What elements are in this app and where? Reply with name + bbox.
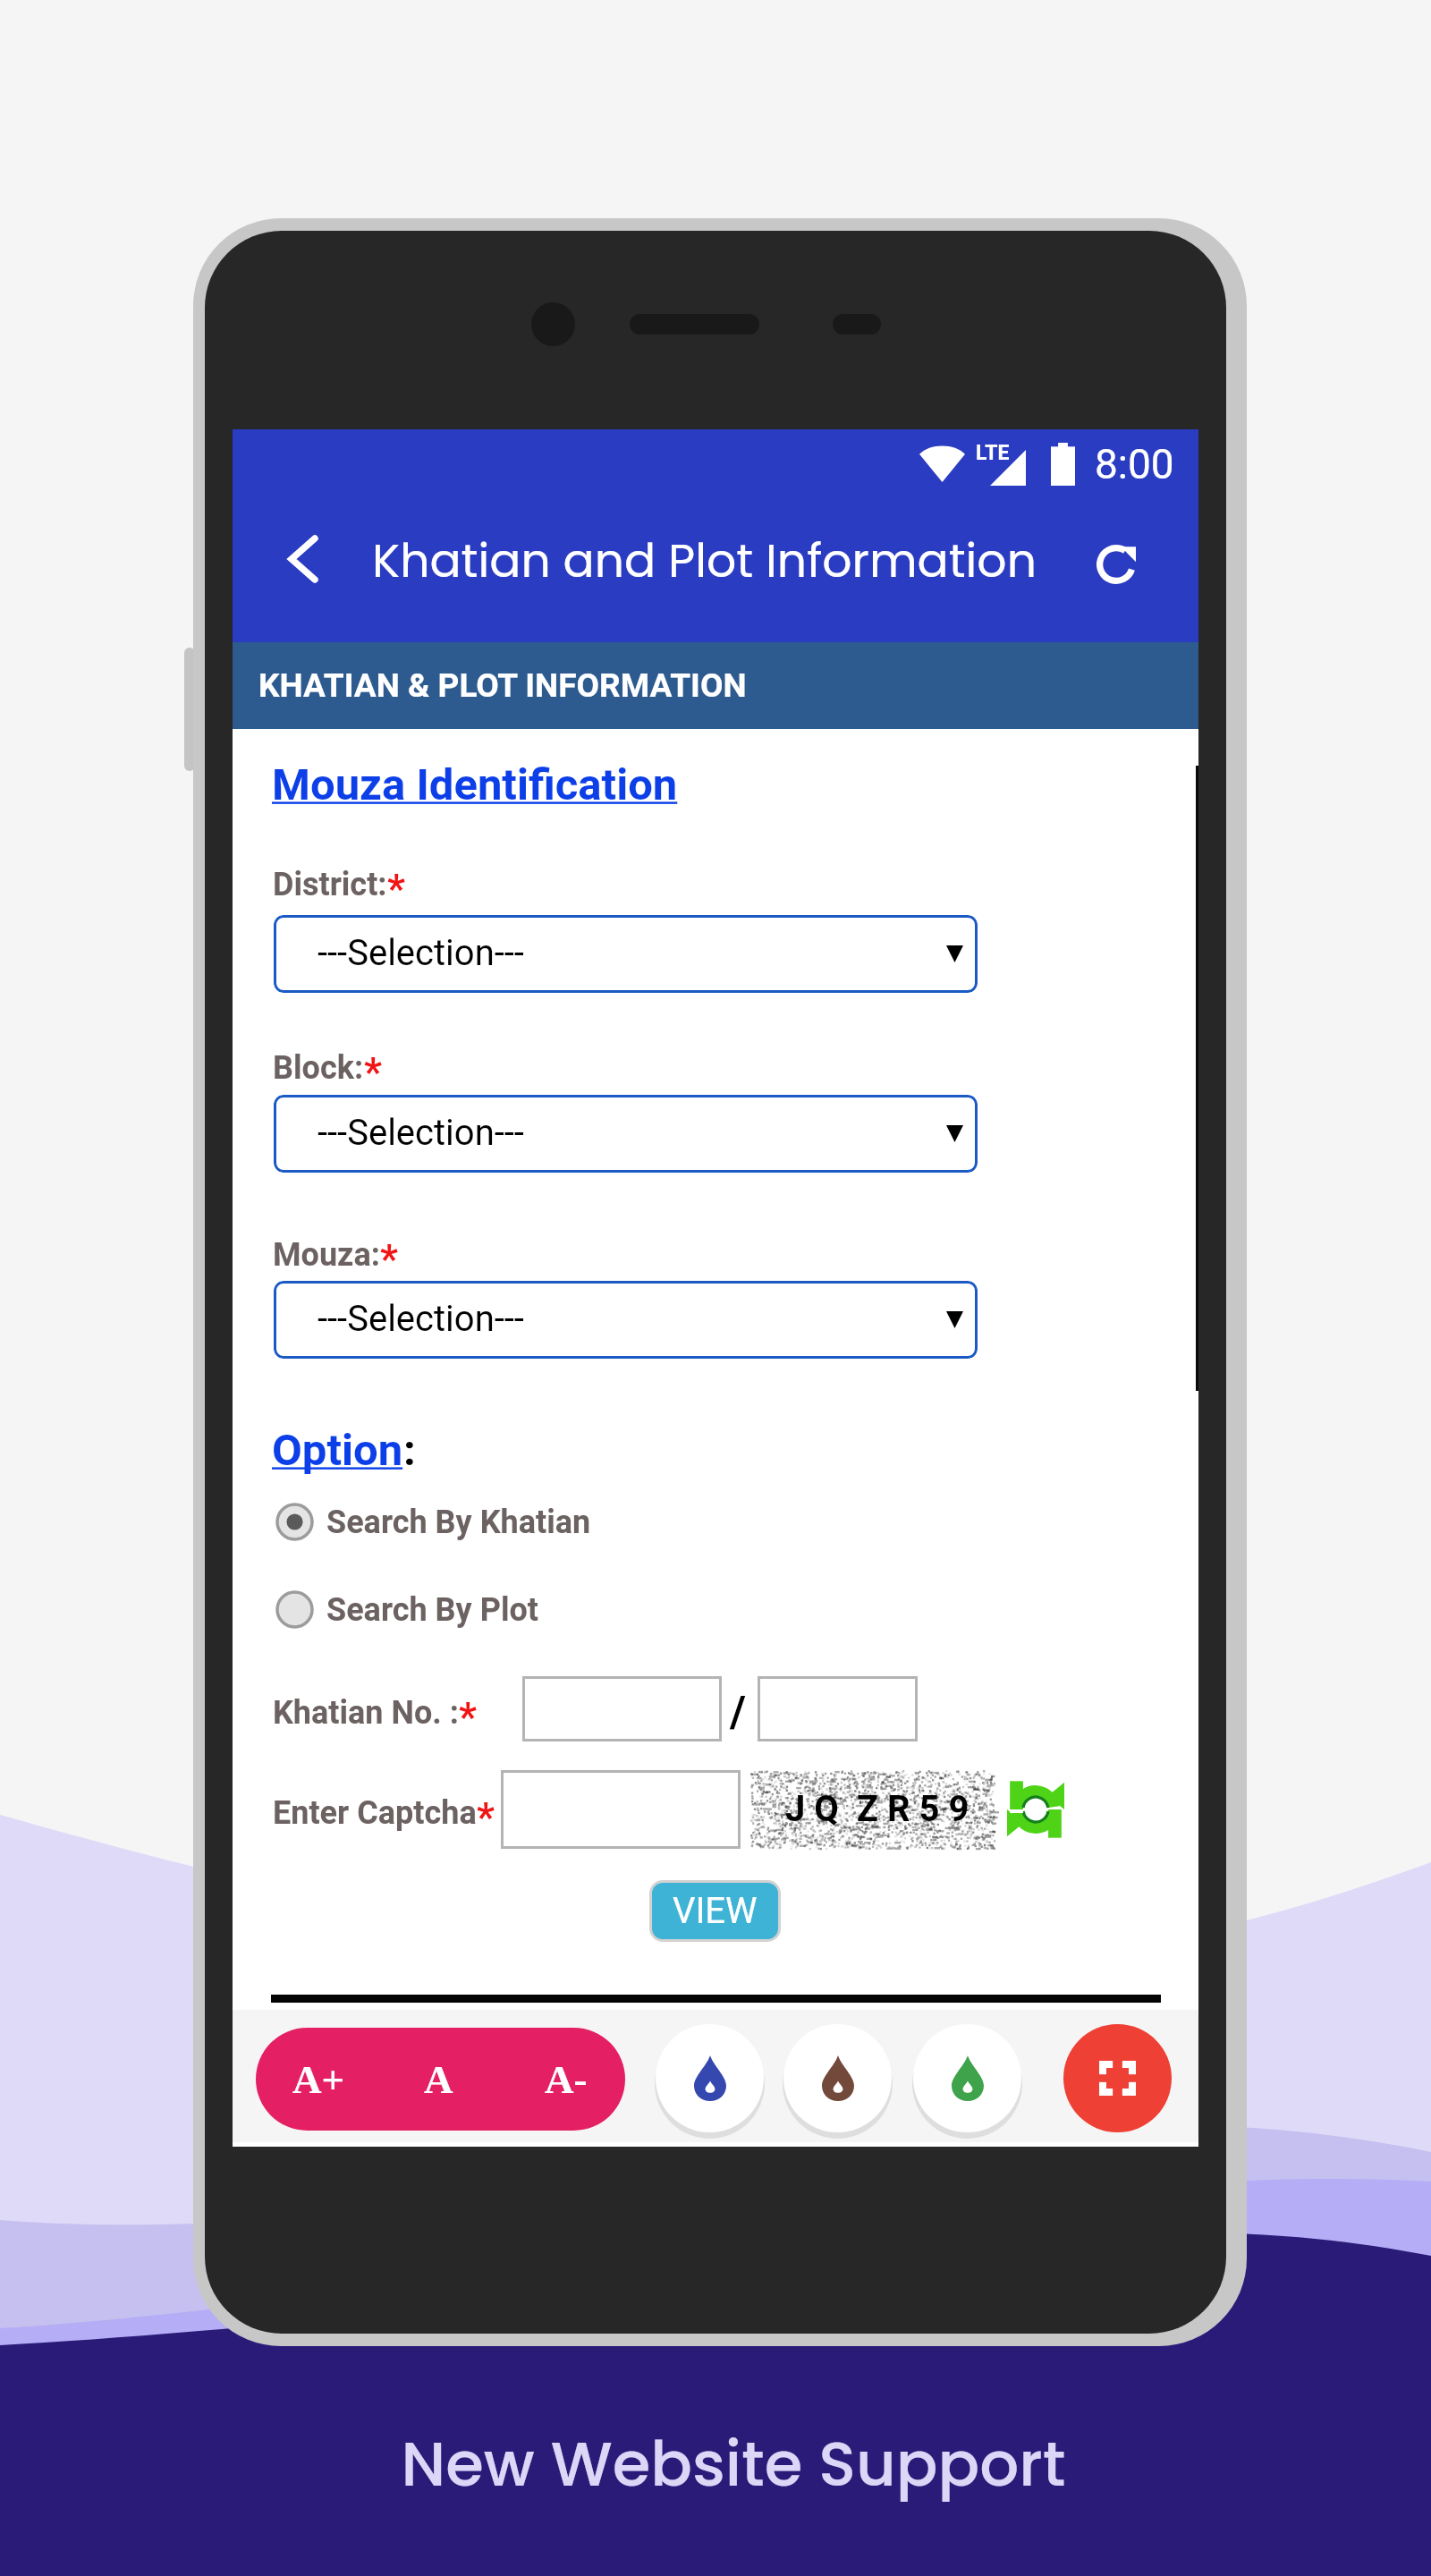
button[interactable]: Fullscreen xyxy=(1063,2024,1172,2132)
button[interactable]: Blue theme xyxy=(656,2024,764,2132)
button[interactable]: Mouza Identification xyxy=(272,759,678,810)
staticText: * xyxy=(459,1694,477,1741)
staticText: ---Selection--- xyxy=(318,932,524,974)
button[interactable]: ---Selection--- xyxy=(274,915,978,993)
staticText: Mouza Identification xyxy=(272,759,678,810)
staticText: Search By Plot xyxy=(326,1591,538,1629)
button[interactable]: Search By Plot xyxy=(275,1590,538,1629)
button[interactable]: ---Selection--- xyxy=(274,1095,978,1173)
staticText: A- xyxy=(545,2057,588,2102)
button[interactable]: Refresh xyxy=(1087,535,1146,594)
staticText: A+ xyxy=(292,2057,345,2102)
staticText: : xyxy=(403,1425,416,1476)
staticText: * xyxy=(387,866,405,912)
staticText: Khatian and Plot Information xyxy=(372,528,1037,593)
staticText: ---Selection--- xyxy=(318,1298,524,1340)
staticText: Mouza: xyxy=(273,1236,380,1274)
staticText: Search By Khatian xyxy=(326,1504,591,1541)
staticText: 8:00 xyxy=(1095,440,1174,488)
staticText: * xyxy=(477,1794,495,1841)
button[interactable]: Option xyxy=(272,1425,403,1476)
staticText: * xyxy=(364,1049,382,1096)
staticText: Block: xyxy=(273,1049,364,1087)
staticText: J Q Z R 5 9 xyxy=(785,1788,970,1830)
staticText: VIEW xyxy=(673,1890,758,1932)
staticText: Option xyxy=(272,1425,403,1476)
button[interactable]: VIEW xyxy=(652,1883,778,1939)
staticText: New Website Support xyxy=(18,2421,1431,2508)
staticText: LTE xyxy=(976,441,1010,465)
staticText: KHATIAN & PLOT INFORMATION xyxy=(258,666,747,705)
button[interactable]: Search By Khatian xyxy=(275,1503,591,1541)
button[interactable]: A+ xyxy=(256,2028,625,2131)
staticText: Khatian No. : xyxy=(273,1694,459,1732)
button[interactable]: Refresh captcha xyxy=(1007,1777,1064,1842)
button[interactable] xyxy=(501,1770,741,1849)
button[interactable]: Green theme xyxy=(913,2024,1021,2132)
staticText: ---Selection--- xyxy=(318,1112,524,1154)
button[interactable]: Back xyxy=(275,531,331,587)
button[interactable] xyxy=(522,1676,722,1741)
button[interactable]: Sepia theme xyxy=(783,2024,892,2132)
staticText: Enter Captcha xyxy=(273,1794,477,1832)
staticText: A xyxy=(424,2057,453,2102)
staticText: / xyxy=(730,1686,746,1736)
staticText: District: xyxy=(273,866,387,903)
button[interactable] xyxy=(758,1676,918,1741)
staticText: * xyxy=(380,1236,398,1283)
button[interactable]: ---Selection--- xyxy=(274,1281,978,1359)
